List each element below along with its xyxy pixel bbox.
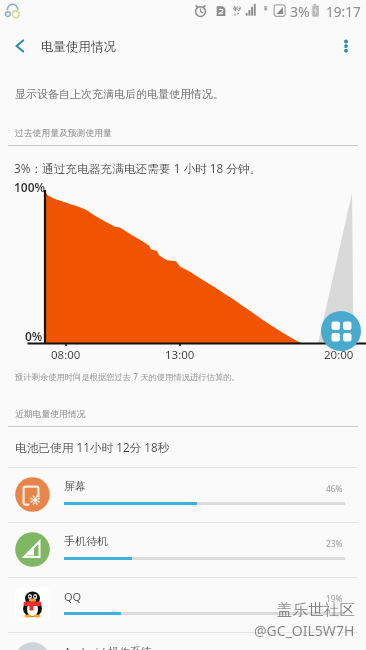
staticText: 08:00 — [51, 347, 81, 363]
staticText: 电量使用情况 — [41, 39, 116, 55]
staticText: 盖乐世社区 — [277, 600, 355, 620]
staticText: 19% — [326, 593, 343, 604]
staticText: 0% — [25, 328, 43, 344]
staticText: @GC_OIL5W7H — [254, 621, 355, 640]
staticText: 预计剩余使用时间是根据您过去 7 天的使用情况进行估算的。 — [15, 371, 240, 382]
staticText: 23% — [326, 538, 343, 549]
button[interactable]: Back — [0, 26, 40, 66]
staticText: 3%：通过充电器充满电还需要 1 小时 18 分钟。 — [14, 160, 262, 176]
button[interactable]: 手机待机 — [0, 522, 366, 577]
staticText: 13:00 — [165, 347, 195, 363]
button[interactable]: More options — [326, 26, 366, 66]
staticText: 19:17 — [326, 2, 361, 21]
button[interactable]: QQ — [0, 577, 366, 632]
staticText: 手机待机 — [64, 534, 108, 548]
staticText: Android 操作系统 — [64, 644, 153, 650]
staticText: 显示设备自上次充满电后的电量使用情况。 — [15, 87, 224, 101]
staticText: 46% — [326, 483, 343, 494]
staticText: 3% — [290, 2, 310, 21]
staticText: 电池已使用 11小时 12分 18秒 — [15, 439, 170, 455]
staticText: 20:00 — [324, 347, 354, 363]
staticText: 屏幕 — [64, 479, 86, 493]
staticText: 近期电量使用情况 — [15, 409, 86, 420]
staticText: 100% — [14, 179, 46, 195]
staticText: 过去使用量及预测使用量 — [15, 128, 112, 139]
button[interactable]: 屏幕 — [0, 467, 366, 522]
button[interactable]: Android 操作系统 — [0, 632, 366, 650]
button[interactable]: Apps — [321, 311, 361, 351]
staticText: QQ — [64, 589, 82, 604]
